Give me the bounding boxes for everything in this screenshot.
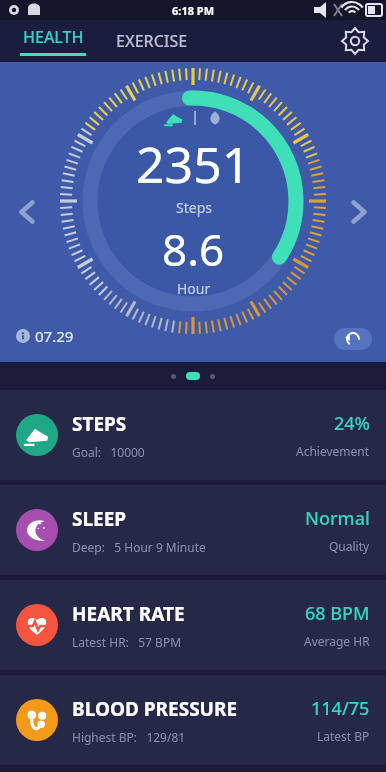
staticText: Latest HR: 57 BPM (72, 634, 182, 650)
button[interactable]: BLOOD PRESSURE (0, 675, 386, 765)
button[interactable]: SLEEP (0, 485, 386, 575)
staticText: Normal (305, 506, 370, 531)
button[interactable]: HEART RATE (0, 580, 386, 670)
staticText: SLEEP (72, 506, 127, 532)
staticText: HEART RATE (72, 601, 185, 627)
staticText: Latest BP (317, 728, 370, 744)
button[interactable]: Previous day (10, 195, 44, 229)
staticText: 68 BPM (305, 601, 370, 626)
staticText: 2351 (136, 130, 251, 198)
staticText: 114/75 (311, 696, 370, 721)
staticText: BLOOD PRESSURE (72, 696, 238, 722)
staticText: 07.29 (35, 326, 74, 346)
button[interactable]: Refresh (334, 328, 372, 350)
staticText: Achievement (296, 443, 370, 459)
staticText: Quality (329, 538, 370, 554)
staticText: Highest BP: 129/81 (72, 729, 186, 745)
staticText: Goal: 10000 (72, 444, 145, 460)
staticText: 8.6 (162, 219, 225, 279)
staticText: 24% (334, 411, 370, 436)
staticText: STEPS (72, 411, 127, 437)
staticText: Steps (176, 198, 212, 217)
staticText: EXERCISE (116, 30, 188, 52)
button[interactable]: 07.29 (16, 326, 74, 346)
button[interactable]: Settings (338, 24, 372, 58)
staticText: HEALTH (23, 26, 84, 48)
staticText: Average HR (304, 633, 370, 649)
staticText: 6:18 PM (172, 3, 215, 18)
staticText: Hour (177, 279, 211, 298)
button[interactable]: STEPS (0, 390, 386, 480)
button[interactable]: HEALTH (18, 26, 88, 56)
button[interactable]: EXERCISE (114, 26, 190, 56)
button[interactable]: Next day (342, 195, 376, 229)
staticText: Deep: 5 Hour 9 Minute (72, 539, 206, 555)
